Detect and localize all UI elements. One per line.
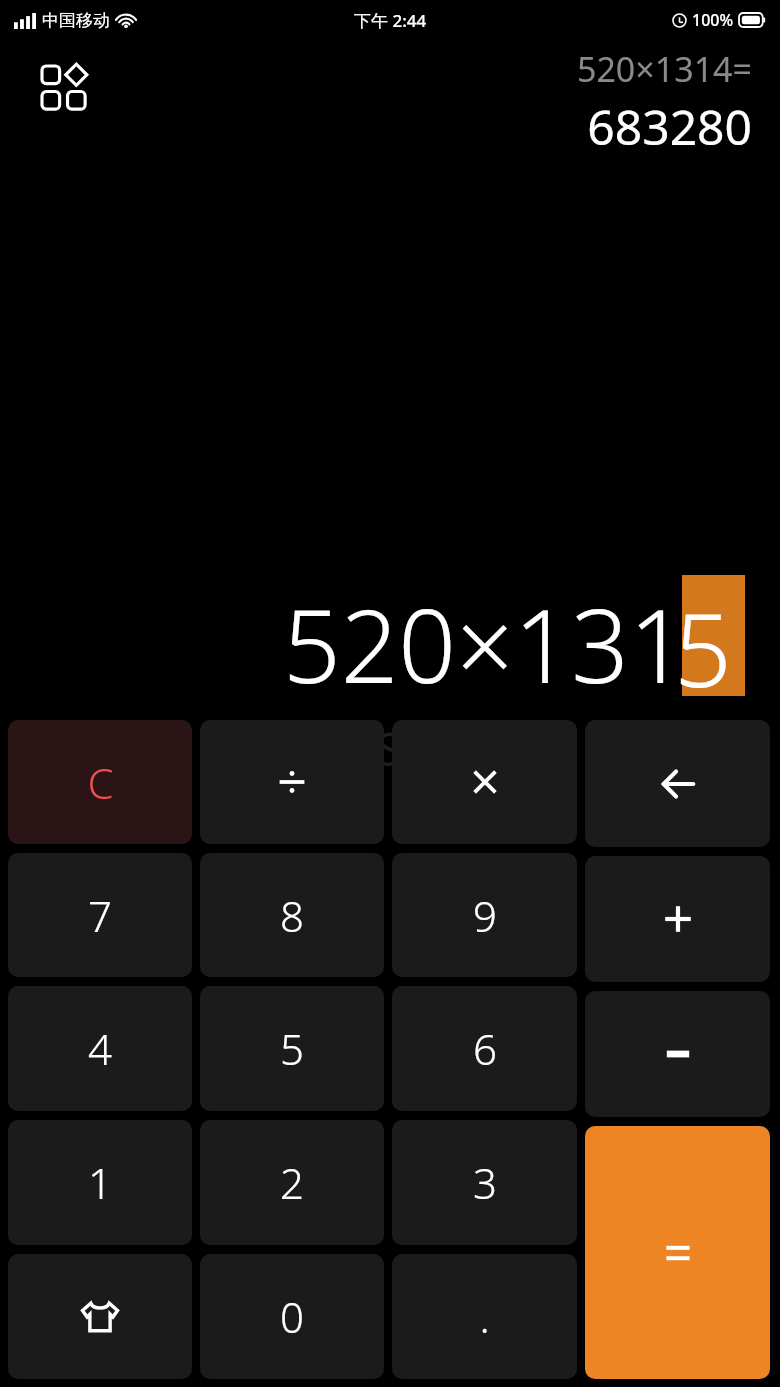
staticText: 9 — [473, 887, 497, 944]
staticText: 8 — [280, 887, 304, 944]
button[interactable]: 3 — [392, 1120, 577, 1245]
button[interactable]: . — [392, 1254, 577, 1379]
staticText: C — [87, 754, 114, 811]
staticText: 3 — [473, 1154, 497, 1211]
button[interactable]: Theme — [8, 1254, 192, 1379]
staticText: 520×1314= — [576, 46, 752, 92]
button[interactable]: Multiply — [392, 720, 577, 844]
button[interactable]: 2 — [200, 1120, 384, 1245]
button[interactable]: 0 — [200, 1254, 384, 1379]
staticText: 683280 — [587, 94, 752, 159]
button[interactable]: 5 — [200, 986, 384, 1111]
staticText: UpdateStar.com — [218, 717, 562, 780]
button[interactable]: 7 — [8, 853, 192, 977]
button[interactable]: Divide — [200, 720, 384, 844]
staticText: 下午 2:44 — [354, 9, 427, 32]
staticText: 5 — [674, 579, 732, 717]
button[interactable]: Plus — [585, 856, 770, 982]
staticText: 5 — [280, 1020, 304, 1077]
staticText: 100% — [692, 9, 734, 31]
button[interactable]: 1 — [8, 1120, 192, 1245]
staticText: 1 — [88, 1154, 112, 1211]
button[interactable]: 9 — [392, 853, 577, 977]
button[interactable]: Backspace — [585, 720, 770, 847]
button[interactable]: C — [8, 720, 192, 844]
staticText: . — [479, 1288, 490, 1345]
staticText: 520×1315 — [283, 575, 745, 713]
button[interactable]: 6 — [392, 986, 577, 1111]
button[interactable]: 4 — [8, 986, 192, 1111]
staticText: 2 — [280, 1154, 304, 1211]
staticText: 4 — [88, 1020, 112, 1077]
staticText: 0 — [280, 1288, 304, 1345]
staticText: 7 — [88, 887, 112, 944]
staticText: 中国移动 — [42, 10, 110, 31]
button[interactable]: Apps — [30, 54, 98, 122]
button[interactable]: 8 — [200, 853, 384, 977]
button[interactable]: Minus — [585, 991, 770, 1117]
button[interactable]: Equals — [585, 1126, 770, 1379]
staticText: 6 — [473, 1020, 497, 1077]
